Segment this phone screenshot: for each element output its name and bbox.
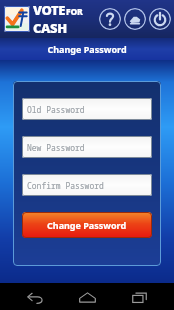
button[interactable]: Logout bbox=[149, 8, 171, 30]
button[interactable]: Recent apps bbox=[122, 285, 156, 309]
staticText: New Password bbox=[27, 142, 85, 153]
staticText: Change Password bbox=[47, 43, 127, 55]
button[interactable]: New Password bbox=[22, 136, 152, 158]
button[interactable]: Home bbox=[70, 285, 104, 309]
staticText: VOTE bbox=[33, 1, 66, 19]
button[interactable]: Confirm Password bbox=[22, 174, 152, 196]
button[interactable]: Old Password bbox=[22, 98, 152, 120]
staticText: CASH bbox=[33, 19, 67, 37]
button[interactable]: Vote For Cash logo bbox=[4, 6, 30, 32]
button[interactable]: Back bbox=[18, 285, 52, 309]
button[interactable]: Change Password bbox=[22, 212, 152, 238]
staticText: Confirm Password bbox=[27, 180, 104, 191]
staticText: FOR bbox=[66, 6, 83, 18]
button[interactable]: VOTE bbox=[33, 1, 83, 37]
staticText: Old Password bbox=[27, 104, 85, 115]
staticText: Change Password bbox=[47, 219, 127, 231]
button[interactable]: Help bbox=[99, 8, 121, 30]
button[interactable]: Feedback bbox=[124, 8, 146, 30]
